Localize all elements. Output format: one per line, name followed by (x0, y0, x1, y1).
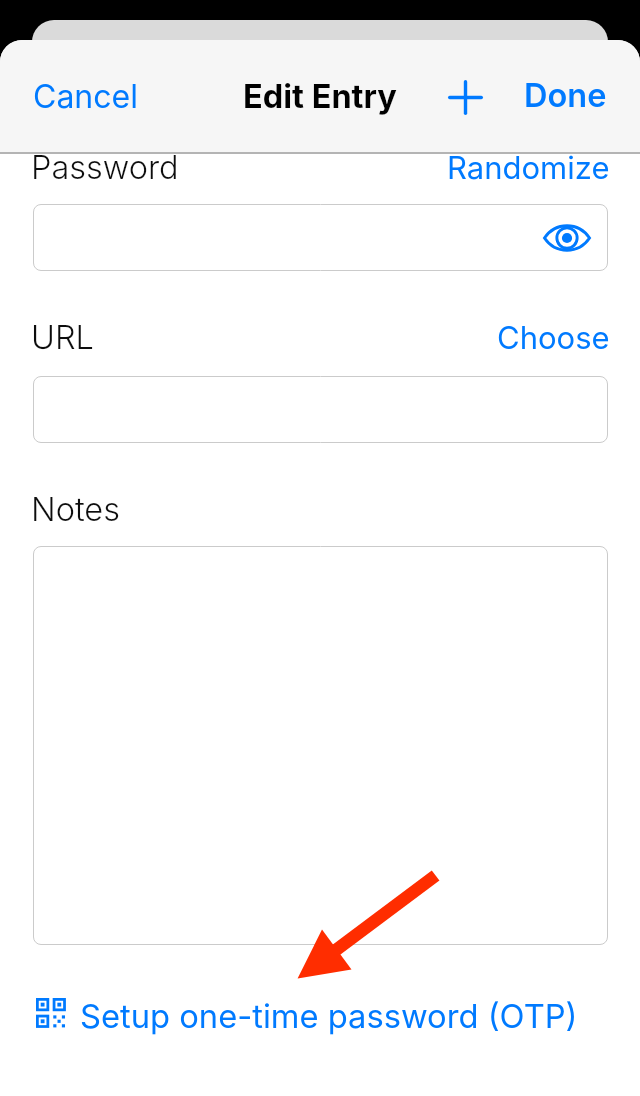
staticText: Choose (497, 319, 610, 357)
button[interactable]: Randomize (435, 137, 622, 199)
button[interactable]: Done (512, 64, 619, 127)
button[interactable] (33, 376, 608, 443)
staticText: Cancel (33, 77, 138, 116)
staticText: Notes (31, 490, 120, 529)
staticText: Randomize (447, 149, 610, 187)
staticText: Setup one-time password (OTP) (80, 996, 578, 1036)
button[interactable]: Show password (33, 204, 608, 271)
staticText: Password (31, 148, 179, 187)
button[interactable]: Show password (543, 225, 591, 251)
staticText: Done (524, 76, 607, 115)
staticText: Edit Entry (243, 77, 397, 116)
button[interactable]: Choose (485, 307, 622, 369)
button[interactable]: Setup one-time password (OTP) (36, 996, 578, 1036)
button[interactable] (33, 546, 608, 945)
staticText: URL (31, 318, 94, 357)
button[interactable]: Add field (440, 72, 490, 122)
button[interactable]: Cancel (21, 65, 150, 128)
